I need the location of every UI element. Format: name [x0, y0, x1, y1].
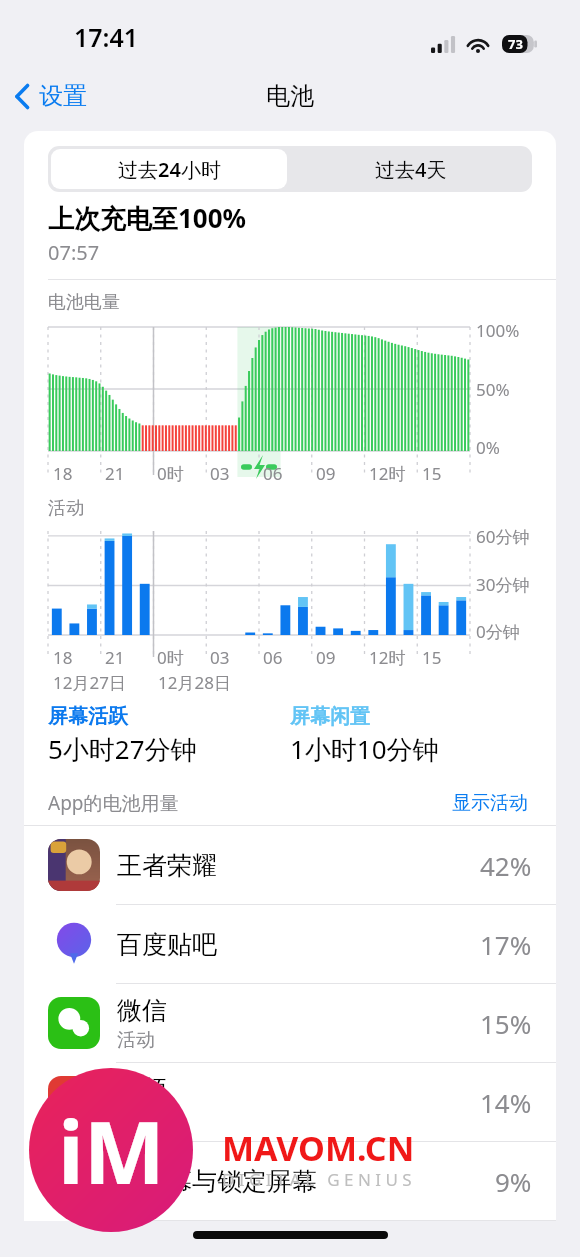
staticText: 微信	[117, 995, 167, 1026]
staticText: 50%	[476, 378, 510, 401]
button[interactable]: 百度贴吧	[24, 905, 556, 983]
button[interactable]: 过去4天	[290, 146, 532, 192]
staticText: 03	[210, 646, 230, 669]
staticText: 12时	[369, 646, 406, 669]
staticText: 屏幕闲置	[290, 704, 370, 729]
staticText: 03	[210, 462, 230, 485]
staticText: 07:57	[48, 239, 100, 266]
staticText: 活动	[117, 1107, 155, 1131]
staticText: 活动	[117, 1028, 155, 1052]
staticText: 73	[508, 35, 523, 53]
staticText: 60分钟	[476, 525, 530, 548]
staticText: 15	[422, 646, 442, 669]
staticText: 18	[53, 462, 73, 485]
staticText: 09	[316, 646, 336, 669]
staticText: 上次充电至100%	[48, 200, 247, 236]
staticText: 18	[53, 646, 73, 669]
staticText: 15%	[480, 1006, 532, 1041]
button[interactable]: 主屏幕与锁定屏幕	[24, 1142, 556, 1220]
staticText: App的电池用量	[48, 790, 179, 816]
staticText: 过去4天	[375, 156, 447, 183]
staticText: 电池电量	[48, 291, 120, 314]
staticText: 06	[263, 646, 283, 669]
staticText: 主屏幕与锁定屏幕	[117, 1166, 317, 1197]
staticText: 15	[422, 462, 442, 485]
button[interactable]: 过去24小时	[51, 149, 287, 189]
staticText: D I G I T A L G E N I U S	[222, 1168, 412, 1191]
staticText: 1小时10分钟	[290, 731, 439, 767]
staticText: 12时	[369, 462, 406, 485]
staticText: 王者荣耀	[117, 850, 217, 881]
staticText: 视频	[117, 1074, 167, 1105]
staticText: 0时	[157, 462, 184, 485]
staticText: 12月28日	[158, 671, 231, 694]
staticText: 0%	[476, 436, 500, 459]
staticText: 百度贴吧	[117, 929, 217, 960]
staticText: 显示活动	[452, 791, 528, 815]
staticText: 电池	[266, 81, 314, 111]
staticText: 06	[263, 462, 283, 485]
staticText: 21	[105, 646, 125, 669]
staticText: 09	[316, 462, 336, 485]
staticText: MAVOM.CN	[222, 1125, 415, 1171]
button[interactable]: 王者荣耀	[24, 826, 556, 904]
staticText: 设置	[39, 81, 87, 111]
staticText: iM	[58, 1092, 165, 1209]
staticText: 0分钟	[476, 620, 520, 643]
staticText: 9%	[495, 1164, 532, 1199]
staticText: 活动	[48, 497, 84, 520]
other: Back	[14, 83, 30, 110]
button[interactable]: Back	[0, 73, 99, 119]
staticText: 5小时27分钟	[48, 731, 197, 767]
staticText: 17:41	[74, 20, 139, 54]
button[interactable]: 微信	[24, 984, 556, 1062]
button[interactable]: 显示活动	[448, 787, 532, 819]
staticText: 30分钟	[476, 573, 530, 596]
staticText: 42%	[480, 848, 532, 883]
staticText: 0时	[157, 646, 184, 669]
staticText: 14%	[480, 1085, 532, 1120]
staticText: 过去24小时	[118, 156, 221, 183]
staticText: 21	[105, 462, 125, 485]
staticText: 100%	[476, 319, 520, 342]
staticText: 17%	[480, 927, 532, 962]
staticText: 12月27日	[53, 671, 126, 694]
button[interactable]: 视频	[24, 1063, 556, 1141]
staticText: 屏幕活跃	[48, 704, 128, 729]
